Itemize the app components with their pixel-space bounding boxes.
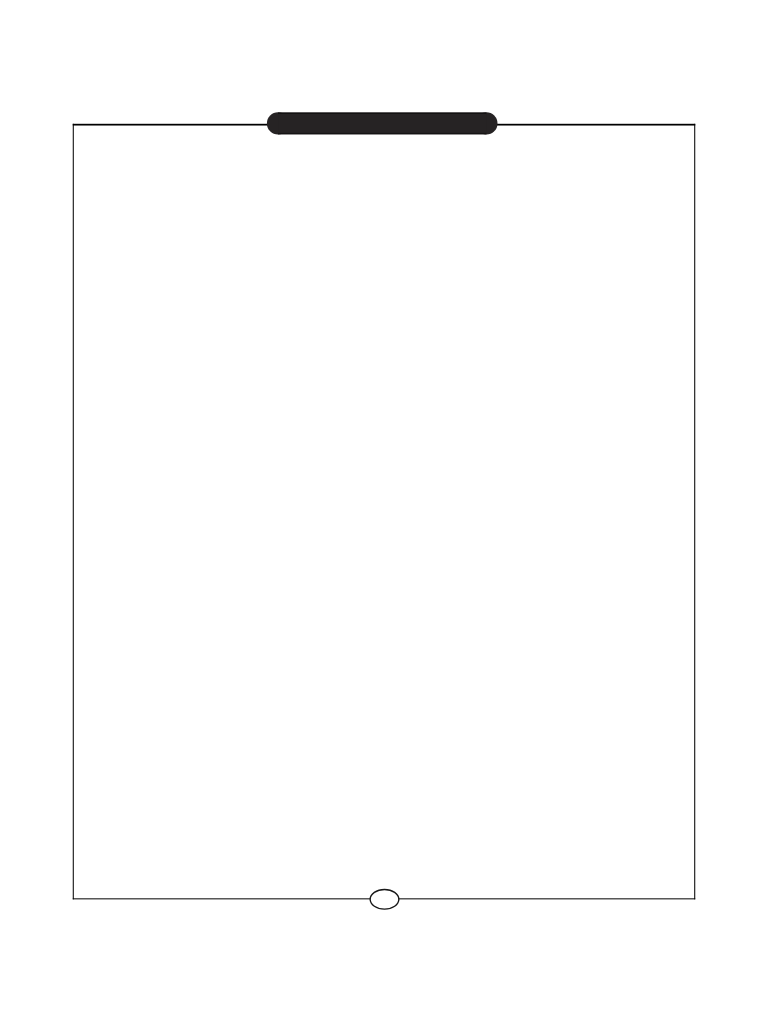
button[interactable]: Home button — [370, 889, 399, 910]
button[interactable]: Phone screen — [73, 125, 694, 898]
